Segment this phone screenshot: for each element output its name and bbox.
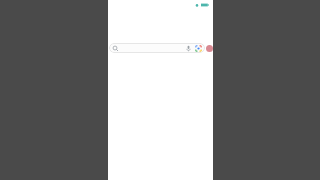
button[interactable]: Search [109,43,205,53]
button[interactable]: Search [112,45,119,52]
button[interactable]: Voice search [185,45,192,52]
button[interactable]: Account [206,45,213,52]
button[interactable]: Google Lens [195,45,202,52]
